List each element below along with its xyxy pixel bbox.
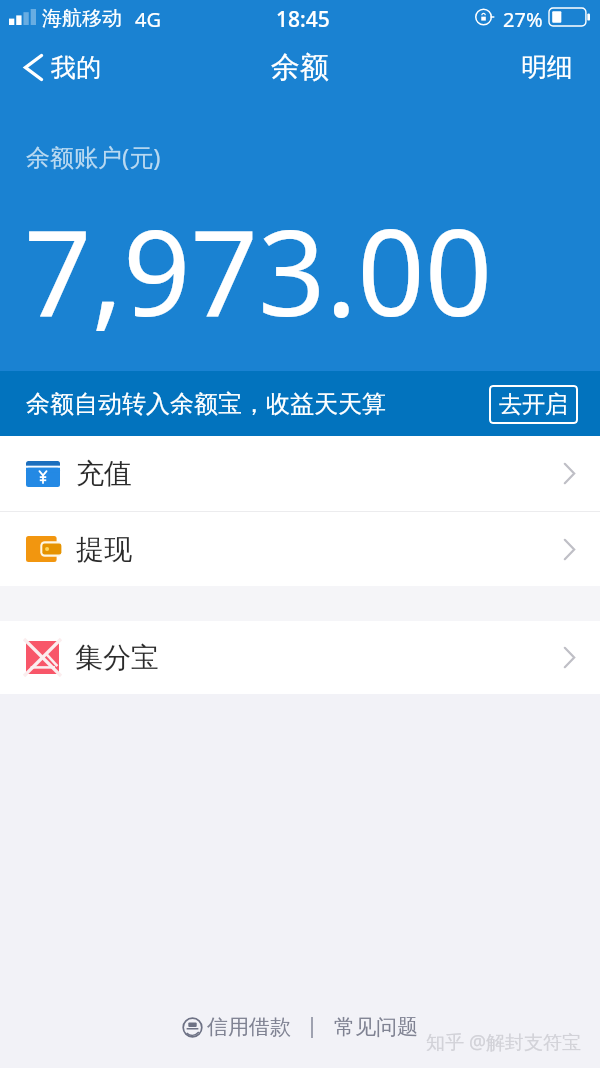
- staticText: 明细: [521, 51, 573, 84]
- staticText: 27%: [503, 6, 543, 33]
- staticText: 去开启: [499, 390, 568, 419]
- button[interactable]: 充值: [0, 436, 600, 511]
- button[interactable]: 提现: [0, 512, 600, 586]
- button[interactable]: 常见问题: [330, 1010, 422, 1044]
- button[interactable]: 信用借款: [178, 1010, 295, 1044]
- staticText: 常见问题: [334, 1014, 418, 1040]
- staticText: 4G: [135, 6, 161, 33]
- button[interactable]: 集分宝: [0, 621, 600, 694]
- staticText: 信用借款: [207, 1014, 291, 1040]
- staticText: 余额: [271, 49, 329, 86]
- staticText: 18:45: [276, 5, 330, 34]
- staticText: 充值: [76, 456, 132, 491]
- staticText: 7,973.00: [24, 190, 493, 351]
- button[interactable]: Back to 我的: [14, 38, 115, 96]
- button[interactable]: 明细: [505, 38, 600, 96]
- button[interactable]: 去开启: [489, 385, 578, 424]
- staticText: 余额账户(元): [26, 140, 161, 173]
- staticText: 我的: [51, 52, 101, 83]
- staticText: 余额自动转入余额宝，收益天天算: [26, 389, 386, 419]
- staticText: 知乎 @解封支符宝: [426, 1029, 582, 1055]
- staticText: 海航移动: [42, 6, 122, 31]
- staticText: 集分宝: [75, 640, 159, 675]
- staticText: 提现: [76, 532, 132, 567]
